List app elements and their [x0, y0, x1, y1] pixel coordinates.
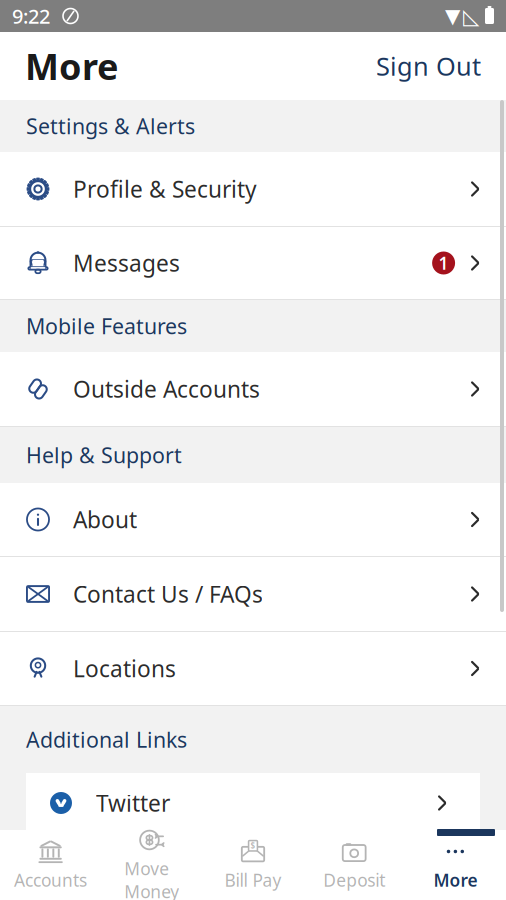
- button[interactable]: More: [405, 833, 506, 897]
- button[interactable]: Outside Accounts: [0, 352, 506, 427]
- button[interactable]: Deposit: [304, 833, 405, 897]
- button[interactable]: Sign Out: [366, 41, 491, 91]
- staticText: Sign Out: [376, 49, 481, 83]
- button[interactable]: Twitter: [26, 773, 480, 833]
- button[interactable]: Move Money: [101, 833, 202, 897]
- staticText: Bill Pay: [224, 868, 281, 891]
- button[interactable]: Contact Us / FAQs: [0, 557, 506, 632]
- staticText: 1: [439, 251, 449, 274]
- staticText: $: [250, 840, 255, 851]
- staticText: Profile & Security: [73, 174, 257, 204]
- staticText: Deposit: [323, 868, 385, 891]
- button[interactable]: About: [0, 483, 506, 557]
- staticText: Messages: [73, 248, 180, 278]
- staticText: Accounts: [14, 868, 87, 891]
- staticText: Twitter: [96, 788, 170, 818]
- button[interactable]: $: [202, 833, 304, 897]
- staticText: ▼: [445, 5, 460, 27]
- staticText: More: [433, 868, 477, 891]
- button[interactable]: Profile & Security: [0, 152, 506, 227]
- staticText: Move Money: [124, 857, 179, 900]
- staticText: Settings & Alerts: [26, 112, 195, 140]
- staticText: ◺: [463, 4, 479, 28]
- staticText: Locations: [73, 653, 176, 683]
- staticText: Help & Support: [26, 441, 182, 469]
- button[interactable]: Accounts: [0, 833, 101, 897]
- staticText: More: [25, 42, 118, 90]
- button[interactable]: Locations: [0, 632, 506, 706]
- staticText: Mobile Features: [26, 312, 187, 340]
- staticText: Contact Us / FAQs: [73, 579, 263, 609]
- staticText: 9:22: [12, 3, 50, 29]
- staticText: Outside Accounts: [73, 374, 260, 404]
- staticText: About: [73, 504, 137, 534]
- staticText: Additional Links: [26, 725, 187, 754]
- button[interactable]: Messages: [0, 227, 506, 300]
